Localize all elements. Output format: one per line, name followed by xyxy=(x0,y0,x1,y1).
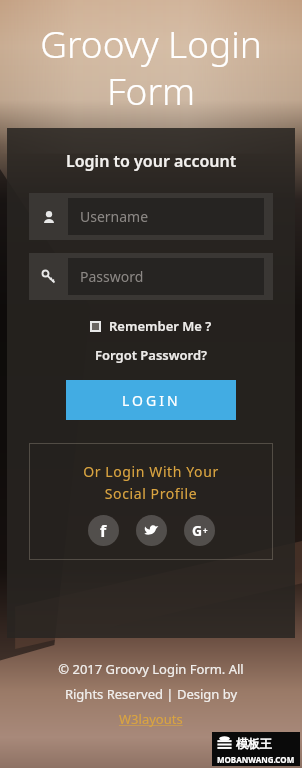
staticText: G xyxy=(192,521,203,540)
staticText: Username xyxy=(80,207,149,226)
staticText: W3layouts xyxy=(119,710,183,728)
button[interactable]: Facebook xyxy=(88,515,119,546)
button[interactable]: LOGIN xyxy=(66,380,236,420)
button[interactable]: Twitter xyxy=(136,515,167,546)
staticText: + xyxy=(203,525,208,536)
staticText: Remember Me ? xyxy=(109,317,212,335)
staticText: Or Login With Your Social Profile xyxy=(29,462,273,503)
button[interactable]: W3layouts xyxy=(119,710,183,728)
staticText: f xyxy=(100,520,107,542)
button[interactable]: Password xyxy=(29,253,273,300)
button[interactable]: Forgot Password? xyxy=(95,346,208,364)
button[interactable]: Username xyxy=(29,193,273,240)
staticText: Groovy Login Form xyxy=(0,18,302,116)
staticText: MOBANWANG.COM xyxy=(217,754,295,765)
staticText: Login to your account xyxy=(66,150,237,172)
staticText: Password xyxy=(80,267,144,286)
button[interactable]: Remember Me ? xyxy=(90,317,212,335)
staticText: 模板王 xyxy=(236,736,272,751)
staticText: © 2017 Groovy Login Form. All Rights Res… xyxy=(0,660,302,703)
staticText: LOGIN xyxy=(122,391,181,410)
button[interactable]: Google Plus xyxy=(184,515,215,546)
staticText: Forgot Password? xyxy=(95,346,208,364)
